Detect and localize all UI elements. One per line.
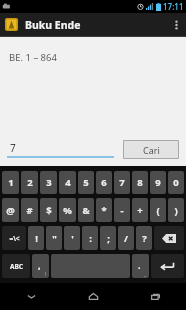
staticText: ,	[38, 259, 41, 271]
staticText: *	[101, 204, 107, 217]
button[interactable]: +	[132, 198, 148, 222]
staticText: 5	[83, 176, 89, 189]
button[interactable]: Backspace	[154, 226, 184, 250]
staticText: 17:11	[163, 1, 184, 12]
button[interactable]: !	[28, 226, 44, 250]
button[interactable]: 2	[21, 171, 38, 194]
button[interactable]: 6	[96, 171, 112, 194]
button[interactable]: 4	[59, 171, 76, 194]
button[interactable]: *	[96, 198, 112, 222]
staticText: 2	[27, 176, 33, 189]
staticText: !	[35, 232, 38, 245]
button[interactable]: More options	[166, 13, 186, 36]
staticText: )	[174, 204, 178, 217]
button[interactable]: #	[21, 198, 38, 222]
staticText: 4	[65, 176, 71, 189]
staticText: !	[45, 271, 47, 278]
button[interactable]: $	[40, 198, 57, 222]
button[interactable]: (	[150, 198, 166, 222]
button[interactable]: %	[59, 198, 76, 222]
staticText: #	[26, 204, 33, 217]
staticText: 1	[8, 176, 14, 189]
button[interactable]: -	[114, 198, 130, 222]
staticText: :	[89, 232, 92, 245]
button[interactable]: .	[132, 254, 149, 278]
button[interactable]: ,	[32, 254, 49, 278]
button[interactable]: =\<	[2, 226, 26, 250]
staticText: 8	[137, 176, 143, 189]
staticText: 7	[119, 176, 125, 189]
button[interactable]: Home	[62, 283, 124, 310]
staticText: $	[46, 204, 52, 217]
button[interactable]: 1	[2, 171, 19, 194]
button[interactable]: '	[64, 226, 80, 250]
staticText: =\<	[9, 234, 20, 243]
staticText: 9	[155, 176, 161, 189]
button[interactable]: Hide keyboard	[0, 283, 62, 310]
staticText: ?	[142, 232, 147, 245]
staticText: BE. 1 – 864	[9, 51, 57, 64]
staticText: .	[138, 259, 141, 271]
button[interactable]: ?	[136, 226, 152, 250]
button[interactable]: Cari	[123, 140, 179, 159]
staticText: ABC	[10, 262, 23, 271]
button[interactable]: 7	[114, 171, 130, 194]
button[interactable]: Recents	[124, 283, 186, 310]
button[interactable]: 0	[168, 171, 184, 194]
staticText: ;	[107, 232, 110, 245]
button[interactable]: /	[118, 226, 134, 250]
staticText: Buku Ende	[25, 18, 81, 32]
staticText: 0	[173, 176, 179, 189]
staticText: /	[124, 232, 128, 245]
button[interactable]: )	[168, 198, 184, 222]
button[interactable]: "	[46, 226, 62, 250]
staticText: "	[52, 232, 57, 245]
staticText: Cari	[143, 144, 160, 156]
button[interactable]: ;	[100, 226, 116, 250]
button[interactable]: @	[2, 198, 19, 222]
staticText: 3	[46, 176, 52, 189]
staticText: +	[137, 204, 143, 217]
staticText: 6	[101, 176, 107, 189]
button[interactable]: 5	[78, 171, 94, 194]
button[interactable]: :	[82, 226, 98, 250]
staticText: '	[71, 232, 74, 245]
staticText: (	[156, 204, 160, 217]
button[interactable]: &	[78, 198, 94, 222]
button[interactable]: 8	[132, 171, 148, 194]
staticText: %	[63, 204, 72, 217]
staticText: 7	[10, 141, 16, 154]
button[interactable]: 9	[150, 171, 166, 194]
staticText: _	[144, 271, 147, 278]
button[interactable]: 7	[7, 141, 114, 158]
staticText: &	[82, 204, 90, 217]
staticText: -	[120, 204, 124, 217]
button[interactable]: Enter	[151, 254, 184, 278]
staticText: @	[6, 204, 15, 217]
button[interactable]: ABC	[2, 254, 30, 278]
button[interactable]: 3	[40, 171, 57, 194]
